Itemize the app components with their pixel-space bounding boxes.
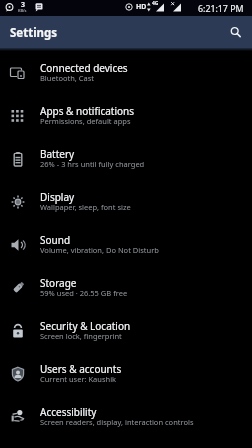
staticText: Security & Location xyxy=(40,319,131,333)
staticText: Storage xyxy=(40,276,77,290)
button[interactable]: Users & accounts xyxy=(0,352,252,395)
button[interactable]: Display xyxy=(0,180,252,223)
staticText: Current user: Kaushik xyxy=(40,374,117,384)
staticText: 26% - 3 hrs until fully charged xyxy=(40,159,145,169)
staticText: Battery xyxy=(40,147,75,161)
staticText: Screen lock, fingerprint xyxy=(40,331,122,341)
button[interactable]: Apps & notifications xyxy=(0,94,252,137)
staticText: Sound xyxy=(40,233,71,247)
button[interactable]: Storage xyxy=(0,266,252,309)
staticText: Apps & notifications xyxy=(40,104,135,118)
button[interactable]: Accessibility xyxy=(0,395,252,438)
staticText: Settings xyxy=(10,25,58,41)
staticText: Screen readers, display, interaction con… xyxy=(40,417,194,427)
staticText: Display xyxy=(40,190,75,204)
staticText: 59% used · 26.55 GB free xyxy=(40,288,128,298)
staticText: Bluetooth, Cast xyxy=(40,73,95,83)
staticText: 3 xyxy=(21,0,26,10)
button[interactable]: Battery xyxy=(0,137,252,180)
button[interactable]: Connected devices xyxy=(0,51,252,94)
staticText: 6:21:17 PM xyxy=(198,3,244,15)
staticText: Accessibility xyxy=(40,405,97,419)
staticText: Connected devices xyxy=(40,61,128,75)
button[interactable] xyxy=(229,25,243,39)
staticText: HD xyxy=(136,2,147,12)
staticText: 4G xyxy=(152,0,159,7)
button[interactable]: Security & Location xyxy=(0,309,252,352)
staticText: Permissions, default apps xyxy=(40,116,131,126)
staticText: Wallpaper, sleep, font size xyxy=(40,202,131,212)
staticText: Users & accounts xyxy=(40,362,122,376)
staticText: Volume, vibration, Do Not Disturb xyxy=(40,245,159,255)
button[interactable]: Sound xyxy=(0,223,252,266)
staticText: KB/s xyxy=(18,8,27,13)
